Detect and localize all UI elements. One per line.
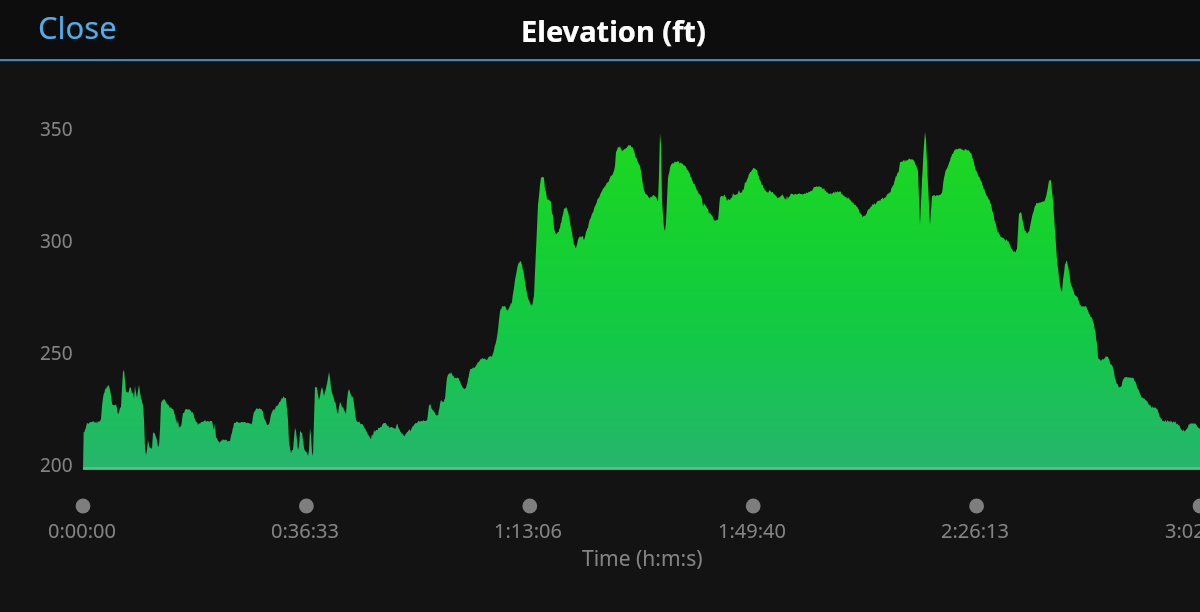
staticText: 1:13:06 (494, 517, 562, 544)
staticText: Time (h:m:s) (582, 544, 703, 573)
button[interactable]: Close (26, 0, 129, 56)
staticText: 250 (40, 340, 73, 366)
staticText: 0:00:00 (48, 517, 116, 544)
staticText: 2:26:13 (941, 517, 1009, 544)
staticText: 1:49:40 (718, 517, 786, 544)
staticText: 300 (40, 228, 73, 254)
staticText: Elevation (ft) (521, 11, 706, 50)
staticText: Close (38, 6, 117, 48)
staticText: 350 (40, 116, 73, 142)
staticText: 0:36:33 (271, 517, 339, 544)
staticText: 200 (40, 452, 73, 478)
staticText: 3:02:46 (1165, 517, 1200, 544)
button[interactable]: Elevation chart (83, 61, 1200, 470)
